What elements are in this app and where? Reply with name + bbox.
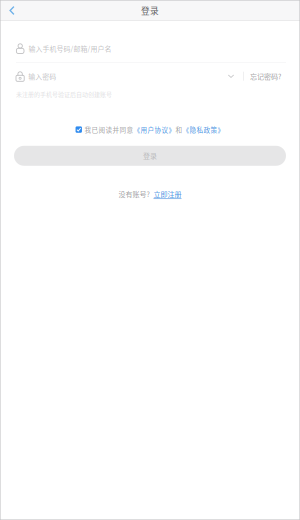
button[interactable]: Back	[0, 1, 24, 20]
button[interactable]: 立即注册	[149, 189, 181, 199]
staticText: 没有账号?	[118, 189, 149, 199]
button[interactable]: Agree to the user agreement and privacy …	[76, 123, 82, 136]
staticText: 忘记密码?	[250, 71, 281, 81]
staticText: 《用户协议》	[133, 125, 175, 134]
staticText: 登录	[141, 4, 159, 17]
button[interactable]: 登录	[14, 146, 286, 166]
staticText: 登录	[143, 151, 157, 161]
staticText: 输入手机号码/邮箱/用户名	[28, 43, 111, 53]
staticText: 和	[175, 125, 182, 134]
staticText: 《隐私政策》	[182, 125, 224, 134]
staticText: 我已阅读并同意	[84, 125, 133, 134]
button[interactable]: 《隐私政策》	[182, 125, 224, 134]
button[interactable]: 《用户协议》	[133, 125, 175, 134]
staticText: 未注册的手机号验证后自动创建账号	[16, 90, 112, 98]
button[interactable]: 忘记密码?	[244, 67, 284, 85]
staticText: 输入密码	[28, 71, 56, 81]
button[interactable]: Show password	[223, 70, 243, 82]
staticText: 立即注册	[153, 189, 181, 199]
